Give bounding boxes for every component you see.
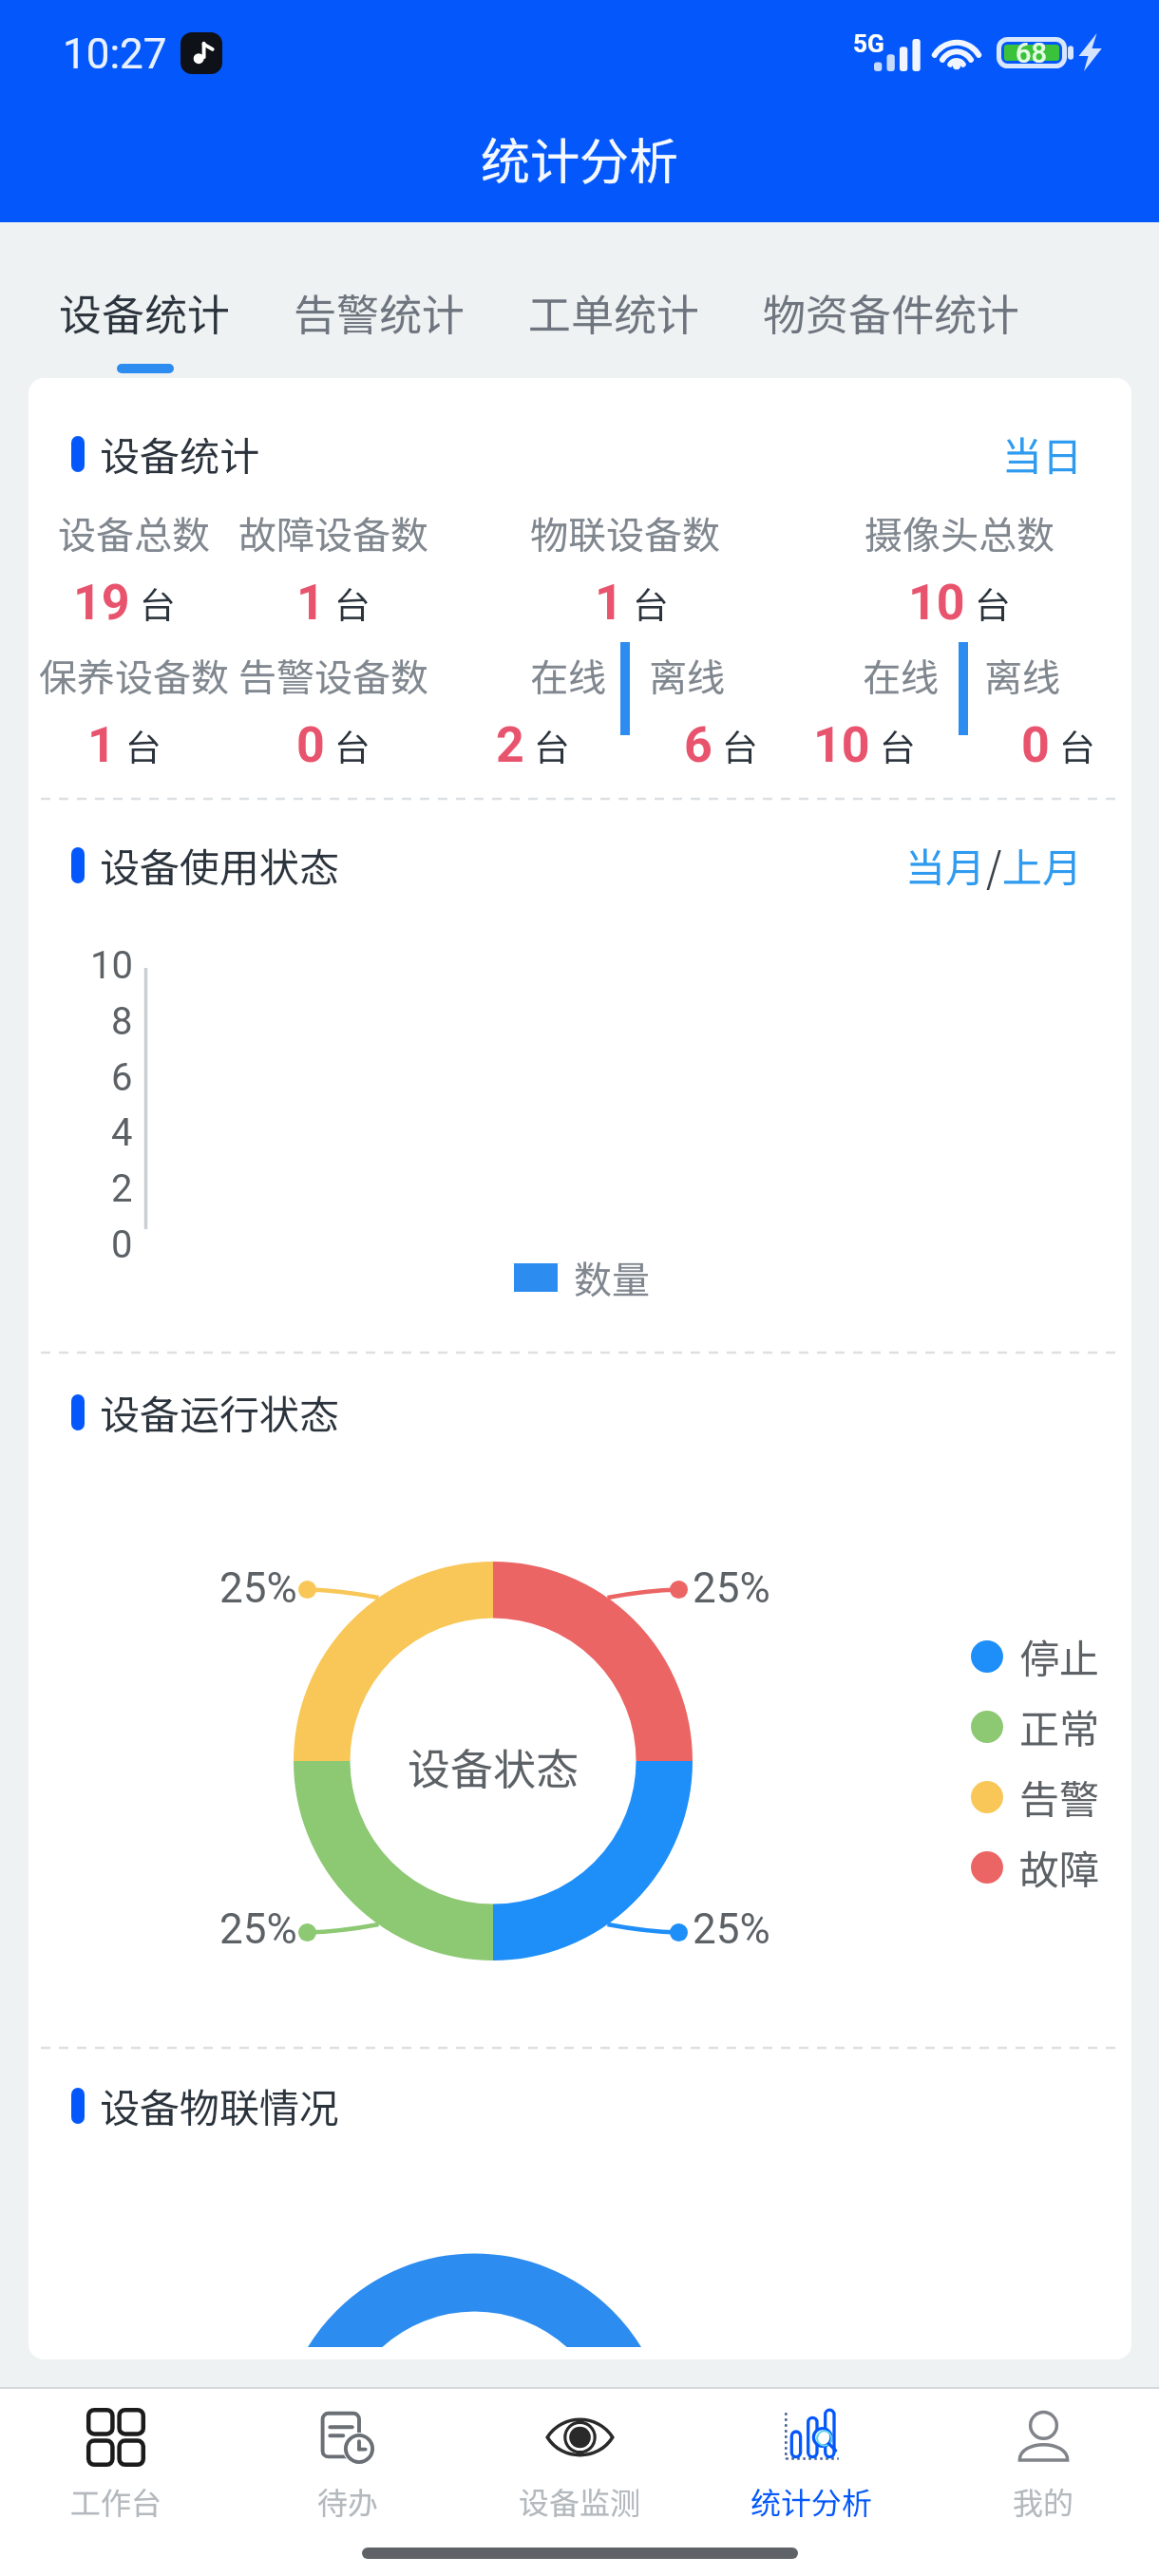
staticText: 故障: [1019, 1838, 1100, 1896]
staticText: 台: [975, 577, 1012, 629]
staticText: 6: [684, 716, 712, 774]
staticText: 25%: [219, 1563, 297, 1613]
button[interactable]: 待办: [232, 2389, 464, 2525]
staticText: 台: [534, 719, 571, 771]
staticText: 台: [140, 577, 177, 629]
staticText: 数量: [574, 1250, 650, 1305]
staticText: 工作台: [70, 2479, 162, 2523]
staticText: 离线: [649, 648, 725, 703]
button[interactable]: 设备统计: [28, 222, 262, 378]
staticText: 1: [296, 574, 325, 632]
staticText: /: [986, 836, 1002, 894]
staticText: 25%: [693, 1904, 770, 1954]
staticText: 6: [111, 1055, 133, 1100]
staticText: 10: [908, 574, 965, 632]
staticText: 在线: [863, 648, 939, 703]
staticText: 19: [73, 574, 130, 632]
staticText: 台: [1059, 719, 1096, 771]
staticText: 设备状态: [408, 1735, 579, 1797]
staticText: 台: [334, 577, 371, 629]
button[interactable]: 告警统计: [262, 222, 497, 378]
staticText: 台: [722, 719, 759, 771]
staticText: 物联设备数: [530, 505, 720, 560]
staticText: 4: [111, 1110, 133, 1155]
staticText: 摄像头总数: [864, 505, 1054, 560]
button[interactable]: 当月: [905, 836, 986, 894]
staticText: 台: [334, 719, 371, 771]
staticText: 物资备件统计: [763, 281, 1020, 343]
staticText: 68: [1016, 37, 1047, 68]
button[interactable]: 设备监测: [464, 2389, 695, 2525]
staticText: 25%: [693, 1563, 770, 1613]
other: 待办: [319, 2409, 376, 2466]
staticText: 设备运行状态: [100, 1383, 340, 1441]
staticText: 保养设备数: [39, 648, 229, 703]
button[interactable]: 当日: [1002, 425, 1083, 483]
other: 统计分析: [783, 2409, 840, 2466]
staticText: 待办: [317, 2479, 379, 2523]
button[interactable]: 工单统计: [497, 222, 731, 378]
button[interactable]: 工作台: [0, 2389, 232, 2525]
staticText: 停止: [1019, 1627, 1100, 1685]
staticText: 台: [125, 719, 162, 771]
button[interactable]: 统计分析: [695, 2389, 927, 2525]
staticText: 台: [880, 719, 917, 771]
staticText: 离线: [984, 648, 1060, 703]
other: 设备监测: [545, 2413, 615, 2462]
button[interactable]: 我的: [927, 2389, 1159, 2525]
staticText: 10:27: [63, 29, 167, 79]
staticText: 工单统计: [528, 281, 700, 343]
staticText: 2: [496, 716, 524, 774]
button[interactable]: 上月: [1002, 836, 1083, 894]
staticText: 告警统计: [294, 281, 465, 343]
staticText: 8: [111, 999, 133, 1044]
staticText: 设备总数: [58, 505, 210, 560]
staticText: 告警: [1019, 1768, 1100, 1826]
staticText: 0: [111, 1222, 133, 1267]
staticText: 设备使用状态: [100, 836, 340, 894]
staticText: 5G: [853, 29, 884, 58]
staticText: 设备统计: [100, 425, 260, 483]
staticText: 设备统计: [59, 281, 231, 343]
staticText: 正常: [1019, 1697, 1100, 1755]
staticText: 台: [633, 577, 670, 629]
staticText: 2: [111, 1166, 133, 1211]
button[interactable]: 物资备件统计: [731, 222, 1052, 378]
staticText: 10: [813, 716, 870, 774]
staticText: 1: [595, 574, 623, 632]
staticText: 25%: [219, 1904, 297, 1954]
staticText: 统计分析: [750, 2479, 873, 2523]
staticText: 1: [87, 716, 116, 774]
staticText: 0: [1021, 716, 1050, 774]
staticText: 10: [90, 943, 133, 988]
staticText: 在线: [530, 648, 606, 703]
staticText: 告警设备数: [238, 648, 428, 703]
staticText: 设备物联情况: [100, 2076, 340, 2134]
staticText: 我的: [1013, 2479, 1074, 2523]
staticText: 故障设备数: [238, 505, 428, 560]
other: 工作台: [87, 2409, 144, 2466]
staticText: 0: [296, 716, 325, 774]
other: 我的: [1014, 2409, 1073, 2466]
staticText: 设备监测: [519, 2479, 641, 2523]
staticText: 统计分析: [481, 123, 679, 194]
